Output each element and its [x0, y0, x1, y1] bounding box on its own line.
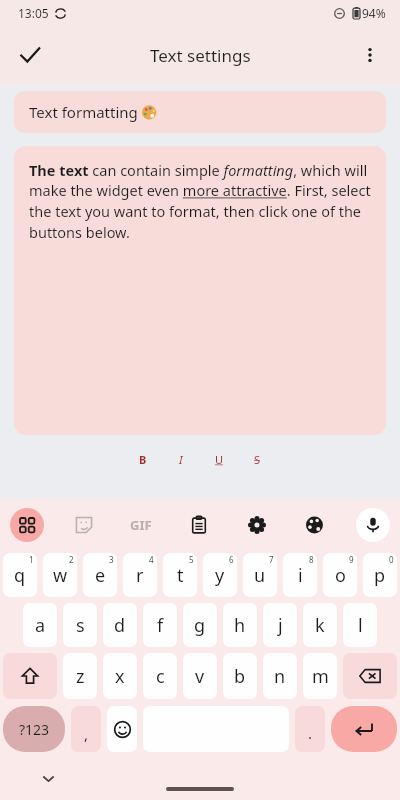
staticText: c	[156, 664, 165, 689]
button[interactable]: Text formatting	[14, 91, 386, 133]
staticText: u	[254, 563, 266, 588]
staticText: 7	[269, 554, 274, 565]
staticText: r	[136, 563, 144, 588]
button[interactable]: ,	[71, 706, 101, 752]
staticText: y	[215, 563, 225, 588]
staticText: v	[195, 664, 205, 689]
staticText: 94%	[362, 5, 386, 21]
button[interactable]: Theme	[298, 508, 332, 542]
button[interactable]: i	[283, 553, 317, 597]
staticText: t	[177, 563, 184, 588]
button[interactable]: S	[244, 446, 270, 472]
staticText: 13:05	[18, 5, 49, 21]
button[interactable]: Emoji	[107, 706, 137, 752]
staticText: a	[35, 613, 46, 638]
staticText: 2	[69, 554, 74, 565]
staticText: B	[139, 452, 147, 467]
staticText: I	[179, 452, 183, 467]
button[interactable]: b	[223, 653, 257, 699]
button[interactable]: Hide keyboard	[32, 762, 64, 794]
button[interactable]: Clipboard	[182, 508, 216, 542]
button[interactable]: w	[43, 553, 77, 597]
staticText: n	[274, 664, 286, 689]
button[interactable]: U	[206, 446, 232, 472]
button[interactable]: ?123	[3, 706, 65, 752]
button[interactable]: y	[203, 553, 237, 597]
staticText: Text settings	[150, 44, 251, 67]
button[interactable]: o	[323, 553, 357, 597]
staticText: x	[115, 664, 125, 689]
button[interactable]: l	[343, 603, 377, 647]
button[interactable]: c	[143, 653, 177, 699]
staticText: The text can contain simple formatting, …	[29, 160, 372, 243]
staticText: e	[95, 563, 106, 588]
button[interactable]: B	[130, 446, 156, 472]
staticText: w	[53, 563, 68, 588]
staticText: b	[234, 664, 246, 689]
staticText: l	[358, 613, 363, 638]
staticText: 3	[109, 554, 114, 565]
button[interactable]: r	[123, 553, 157, 597]
button[interactable]: s	[63, 603, 97, 647]
button[interactable]: x	[103, 653, 137, 699]
staticText: S	[254, 452, 261, 467]
staticText: o	[335, 563, 346, 588]
button[interactable]: .	[295, 706, 325, 752]
staticText: 5	[189, 554, 194, 565]
staticText: 8	[309, 554, 314, 565]
button[interactable]: The text can contain simple formatting, …	[14, 146, 386, 435]
button[interactable]: t	[163, 553, 197, 597]
staticText: i	[298, 563, 303, 588]
staticText: s	[76, 613, 85, 638]
button[interactable]: u	[243, 553, 277, 597]
staticText: m	[312, 664, 329, 689]
button[interactable]: Backspace	[343, 653, 397, 699]
button[interactable]: GIF	[124, 508, 158, 542]
button[interactable]: Sticker	[67, 508, 101, 542]
staticText: g	[194, 613, 206, 638]
staticText: 1	[29, 554, 34, 565]
button[interactable]: v	[183, 653, 217, 699]
staticText: j	[278, 613, 283, 638]
staticText: U	[215, 452, 224, 467]
button[interactable]: p	[363, 553, 397, 597]
staticText: q	[14, 563, 26, 588]
button[interactable]: q	[3, 553, 37, 597]
staticText: p	[374, 563, 386, 588]
button[interactable]: Voice input	[356, 508, 390, 542]
button[interactable]: m	[303, 653, 337, 699]
button[interactable]: f	[143, 603, 177, 647]
staticText: 9	[349, 554, 354, 565]
button[interactable]: j	[263, 603, 297, 647]
staticText: ,	[84, 724, 89, 744]
staticText: k	[315, 613, 325, 638]
staticText: d	[114, 613, 126, 638]
button[interactable]: Settings	[240, 508, 274, 542]
button[interactable]: d	[103, 603, 137, 647]
staticText: h	[234, 613, 246, 638]
button[interactable]: I	[168, 446, 194, 472]
button[interactable]: Switch keyboard	[10, 508, 44, 542]
staticText: 0	[389, 554, 394, 565]
button[interactable]: e	[83, 553, 117, 597]
staticText: GIF	[130, 516, 152, 534]
button[interactable]: z	[63, 653, 97, 699]
button[interactable]: Done	[8, 33, 52, 77]
button[interactable]: g	[183, 603, 217, 647]
button[interactable]: h	[223, 603, 257, 647]
staticText: 4	[149, 554, 154, 565]
button[interactable]: k	[303, 603, 337, 647]
staticText: .	[308, 723, 313, 743]
button[interactable]: a	[23, 603, 57, 647]
button[interactable]: Enter	[331, 706, 397, 752]
button[interactable]: More options	[348, 33, 392, 77]
staticText: ?123	[19, 720, 50, 739]
staticText: z	[76, 664, 85, 689]
staticText: 6	[229, 554, 234, 565]
button[interactable]: Shift	[3, 653, 57, 699]
staticText: Text formatting	[29, 102, 142, 122]
button[interactable]: n	[263, 653, 297, 699]
staticText: f	[157, 613, 164, 638]
